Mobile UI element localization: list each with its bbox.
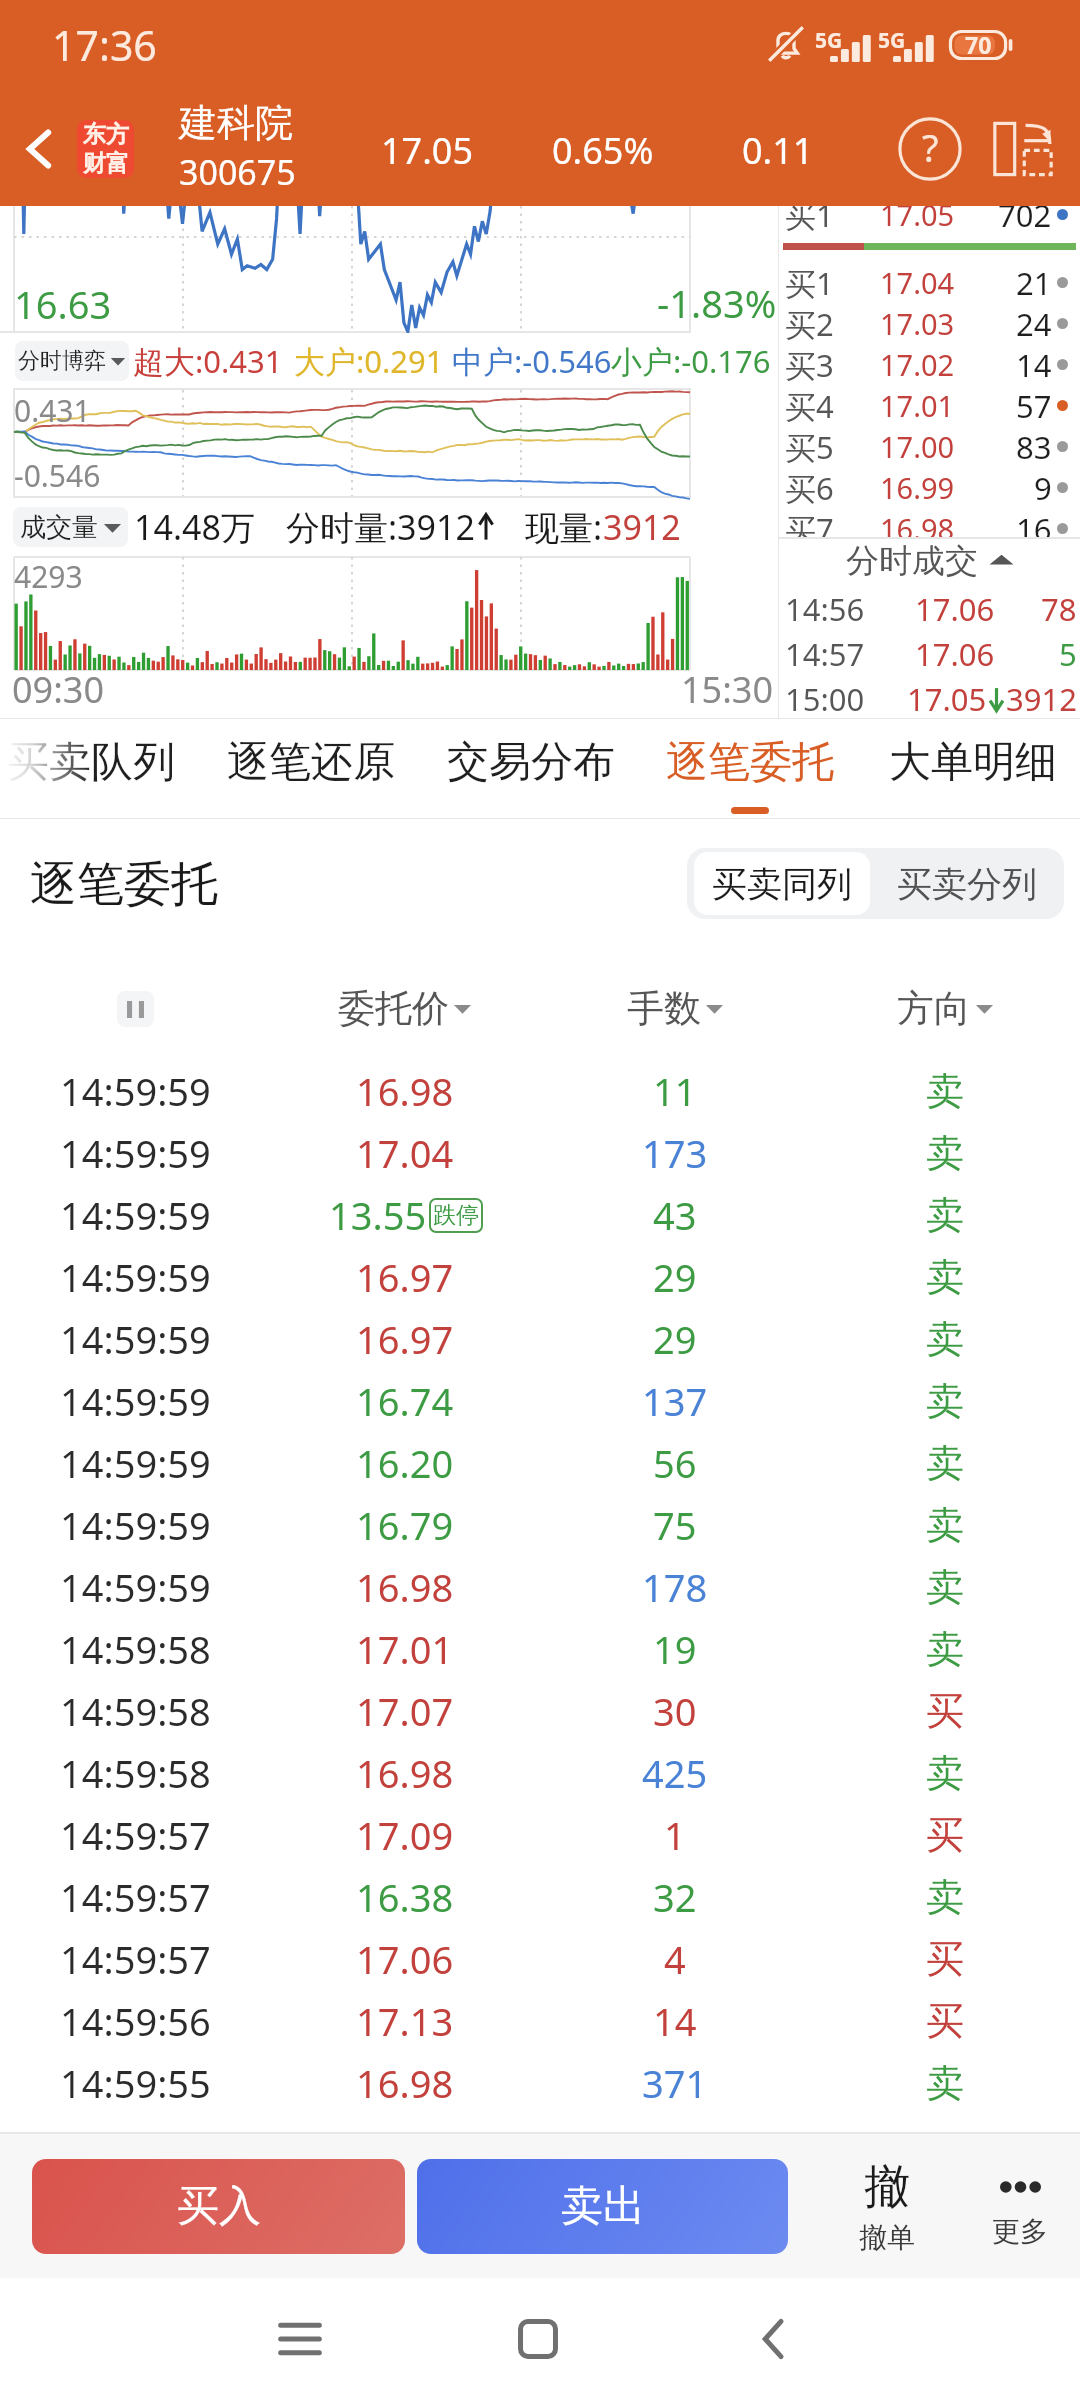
button[interactable]: 14:59:59	[0, 1246, 1080, 1308]
button[interactable]: 14:59:57	[0, 1866, 1080, 1928]
staticText: 16.20	[356, 1437, 454, 1489]
staticText: 撤	[864, 2158, 910, 2216]
staticText: 买1	[785, 262, 834, 303]
button[interactable]: 14:59:59	[0, 1184, 1080, 1246]
staticText: 14.48万	[134, 504, 255, 550]
button[interactable]: 14:59:57	[0, 1928, 1080, 1990]
button[interactable]: 14:57	[779, 632, 1080, 676]
button[interactable]: 分时博弈	[15, 341, 129, 381]
button[interactable]: 14:59:59	[0, 1060, 1080, 1122]
button[interactable]: 分时成交	[779, 540, 1080, 580]
button[interactable]: 买入	[32, 2159, 405, 2254]
button[interactable]: 14:56	[779, 587, 1080, 631]
staticText: 17.05	[880, 206, 955, 234]
button[interactable]: 大单明细	[889, 719, 1057, 818]
button[interactable]: 14:59:57	[0, 1804, 1080, 1866]
button[interactable]: 买3	[779, 344, 1080, 385]
staticText: 43	[653, 1189, 697, 1241]
button[interactable]: Back	[0, 92, 78, 206]
staticText: 建科院	[179, 99, 293, 147]
button[interactable]: 逐笔还原	[227, 719, 395, 818]
button[interactable]: 成交量	[13, 507, 128, 547]
staticText: 5G	[815, 26, 843, 55]
staticText: 32	[653, 1871, 697, 1923]
button[interactable]: 卖出	[417, 2159, 788, 2254]
staticText: 16.74	[356, 1375, 454, 1427]
staticText: 13.55	[329, 1189, 427, 1241]
staticText: 卖	[926, 1625, 964, 1673]
button[interactable]: 14:59:58	[0, 1742, 1080, 1804]
button[interactable]: 14:59:59	[0, 1122, 1080, 1184]
staticText: -0.546	[14, 455, 101, 496]
button[interactable]: Back	[656, 2278, 892, 2400]
staticText: 16.99	[880, 468, 955, 507]
button[interactable]: Recents	[180, 2278, 420, 2400]
staticText: 14:59:59	[60, 1499, 211, 1551]
staticText: 超大:0.431	[133, 340, 283, 382]
button[interactable]: 手数	[540, 952, 810, 1065]
staticText: 70	[965, 29, 992, 59]
button[interactable]: 买卖同列	[694, 852, 870, 915]
button[interactable]: 买2	[779, 303, 1080, 344]
staticText: 卖出	[561, 2180, 645, 2233]
staticText: 19	[653, 1623, 697, 1675]
staticText: 17.04	[356, 1127, 454, 1179]
staticText: 逐笔还原	[227, 736, 395, 789]
button[interactable]: Help	[875, 94, 985, 204]
staticText: 75	[653, 1499, 697, 1551]
button[interactable]: 买1	[779, 206, 1080, 235]
button[interactable]: 买6	[779, 467, 1080, 508]
staticText: 3912	[603, 504, 681, 550]
staticText: 财富	[83, 149, 129, 178]
button[interactable]: 东方财富	[77, 120, 134, 178]
button[interactable]: 14:59:58	[0, 1680, 1080, 1742]
button[interactable]: Pause	[117, 991, 154, 1027]
button[interactable]: 买1	[779, 262, 1080, 303]
button[interactable]: 买5	[779, 426, 1080, 467]
button[interactable]: 14:59:59	[0, 1308, 1080, 1370]
button[interactable]: 交易分布	[447, 719, 615, 818]
button[interactable]: 14:59:58	[0, 1618, 1080, 1680]
staticText: 买2	[785, 303, 834, 344]
button[interactable]: 14:59:59	[0, 1432, 1080, 1494]
button[interactable]: 买4	[779, 385, 1080, 426]
button[interactable]: 更多	[986, 2164, 1054, 2249]
button[interactable]: 14:59:56	[0, 1990, 1080, 2052]
staticText: 委托价	[338, 985, 449, 1032]
staticText: 14:59:59	[60, 1065, 211, 1117]
button[interactable]: 方向	[810, 952, 1080, 1065]
button[interactable]: 买卖队列	[7, 719, 175, 818]
button[interactable]: 委托价	[270, 952, 540, 1065]
staticText: 14	[1016, 344, 1052, 385]
staticText: 现量:	[525, 504, 603, 550]
staticText: 跌停	[433, 1201, 479, 1230]
staticText: 卖	[926, 1377, 964, 1425]
button[interactable]: 逐笔委托	[666, 719, 834, 818]
staticText: 成交量	[20, 511, 98, 544]
button[interactable]: 14:59:55	[0, 2052, 1080, 2114]
staticText: 173	[642, 1127, 708, 1179]
button[interactable]: 14:59:59	[0, 1370, 1080, 1432]
staticText: 16.98	[880, 509, 955, 548]
staticText: 17.05	[381, 126, 474, 175]
staticText: 15:00	[785, 678, 865, 718]
staticText: 买卖同列	[712, 862, 852, 906]
staticText: 买	[926, 1811, 964, 1859]
staticText: 17.01	[880, 386, 955, 425]
staticText: 14:59:59	[60, 1437, 211, 1489]
button[interactable]: 14:59:59	[0, 1556, 1080, 1618]
button[interactable]: 买卖分列	[870, 848, 1064, 919]
staticText: 卖	[926, 1253, 964, 1301]
staticText: 300675	[179, 149, 296, 195]
button[interactable]: 14:59:59	[0, 1494, 1080, 1556]
button[interactable]: 买7	[779, 508, 1080, 549]
staticText: 16.63	[14, 278, 112, 330]
staticText: 3912	[1006, 678, 1077, 718]
button[interactable]: Switch layout	[968, 94, 1078, 204]
staticText: 14:59:56	[60, 1995, 211, 2047]
button[interactable]: Home	[420, 2278, 656, 2400]
staticText: 30	[653, 1685, 697, 1737]
button[interactable]: 撤	[853, 2158, 921, 2255]
staticText: 0.431	[14, 390, 91, 431]
staticText: 卖	[926, 1129, 964, 1177]
